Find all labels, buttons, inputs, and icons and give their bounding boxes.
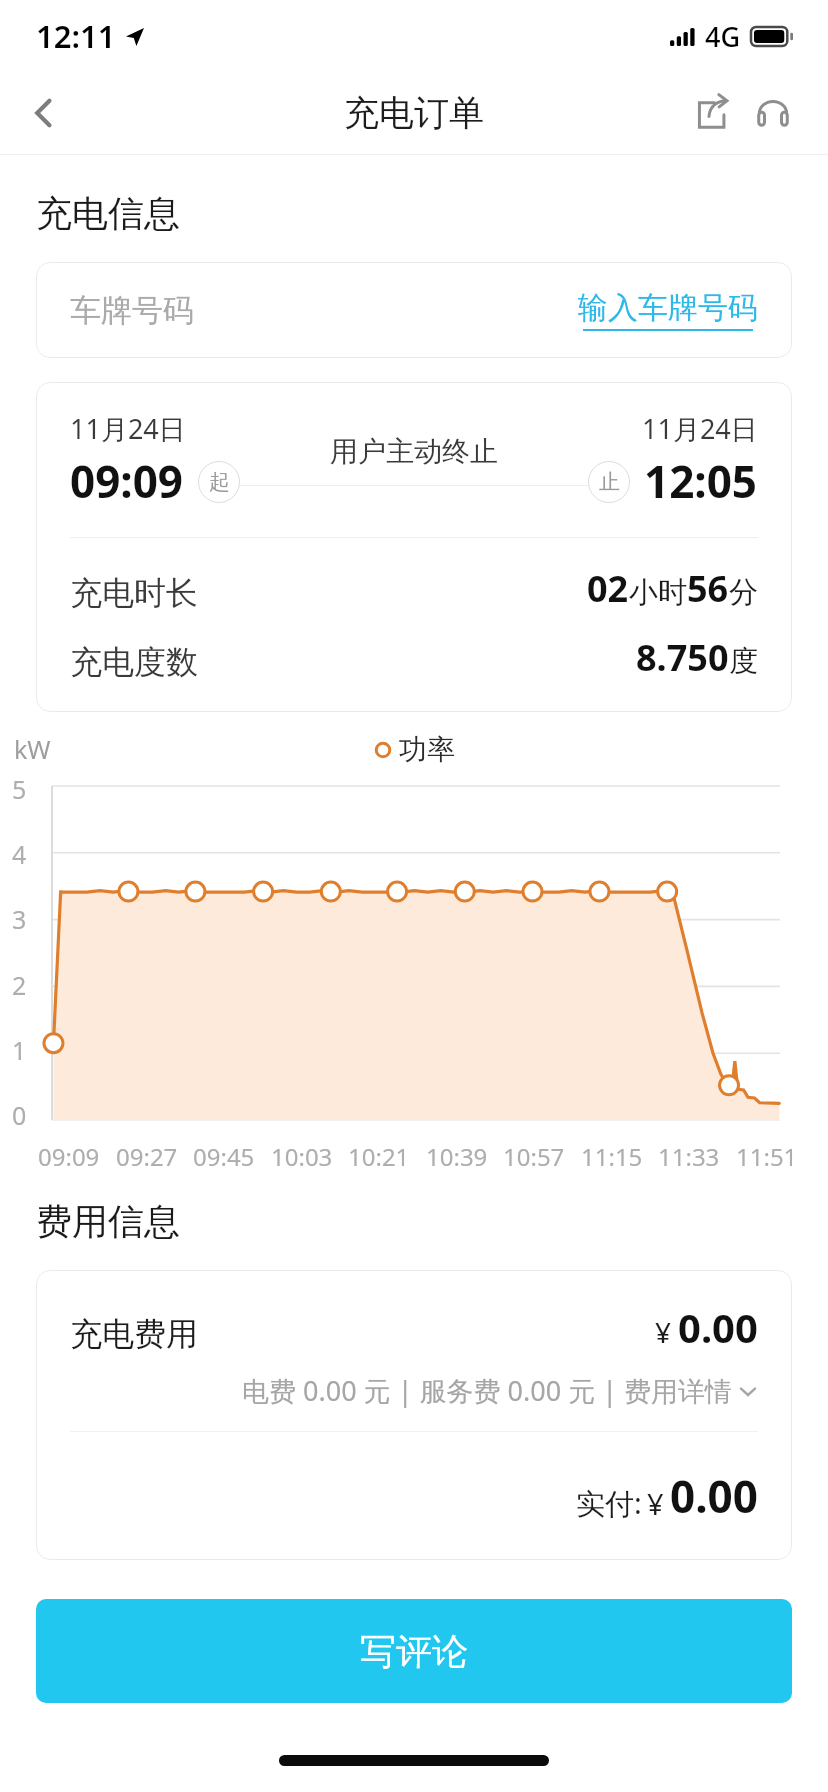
button[interactable]: 车牌号码 bbox=[36, 262, 792, 358]
staticText: 12:05 bbox=[644, 451, 758, 511]
staticText: 10:21 bbox=[348, 1140, 410, 1173]
staticText: ¥ bbox=[655, 1313, 672, 1351]
staticText: 4G bbox=[705, 18, 741, 55]
staticText: 0.00 bbox=[678, 1300, 758, 1354]
staticText: 10:03 bbox=[271, 1140, 333, 1173]
staticText: 电费 0.00 元 | 服务费 0.00 元 | 费用详情 bbox=[242, 1372, 733, 1409]
staticText: 起 bbox=[209, 469, 230, 495]
staticText: 56 bbox=[687, 564, 729, 613]
staticText: 3 bbox=[12, 902, 27, 936]
staticText: 1 bbox=[12, 1033, 27, 1067]
button[interactable]: 写评论 bbox=[36, 1599, 792, 1703]
staticText: 11月24日 bbox=[642, 410, 758, 447]
staticText: 11:51 bbox=[736, 1140, 798, 1173]
staticText: 10:39 bbox=[426, 1140, 488, 1173]
staticText: 09:09 bbox=[70, 451, 184, 511]
staticText: 输入车牌号码 bbox=[578, 289, 758, 327]
staticText: 写评论 bbox=[360, 1629, 468, 1674]
staticText: 2 bbox=[12, 968, 27, 1002]
staticText: 费用信息 bbox=[36, 1199, 180, 1244]
staticText: 11:15 bbox=[581, 1140, 643, 1173]
staticText: 充电时长 bbox=[70, 573, 198, 613]
staticText: 车牌号码 bbox=[70, 291, 194, 330]
staticText: 11月24日 bbox=[70, 410, 186, 447]
staticText: 充电信息 bbox=[36, 191, 180, 236]
staticText: 充电度数 bbox=[70, 642, 198, 682]
staticText: 8.750 bbox=[636, 633, 729, 682]
staticText: 充电订单 bbox=[344, 91, 484, 135]
staticText: 10:57 bbox=[503, 1140, 565, 1173]
staticText: 分 bbox=[729, 574, 758, 611]
staticText: 09:27 bbox=[116, 1140, 178, 1173]
staticText: kW bbox=[14, 732, 51, 766]
staticText: 5 bbox=[12, 772, 27, 806]
staticText: 4 bbox=[12, 837, 27, 871]
staticText: 12:11 bbox=[36, 15, 116, 57]
staticText: 实付: bbox=[576, 1483, 642, 1523]
staticText: 止 bbox=[599, 469, 620, 495]
button[interactable]: Customer service bbox=[742, 82, 804, 144]
staticText: 用户主动终止 bbox=[330, 434, 498, 469]
staticText: 充电费用 bbox=[70, 1314, 198, 1354]
staticText: 09:09 bbox=[38, 1140, 100, 1173]
staticText: 02 bbox=[587, 564, 629, 613]
button[interactable]: 电费 0.00 元 | 服务费 0.00 元 | 费用详情 bbox=[70, 1372, 758, 1409]
staticText: 功率 bbox=[399, 732, 455, 767]
staticText: 11:33 bbox=[658, 1140, 720, 1173]
button[interactable]: Share bbox=[680, 82, 742, 144]
staticText: 度 bbox=[729, 643, 758, 680]
staticText: ¥ bbox=[647, 1484, 664, 1523]
staticText: 0 bbox=[12, 1098, 27, 1132]
button[interactable]: Back bbox=[8, 77, 80, 149]
staticText: 小时 bbox=[629, 574, 687, 611]
staticText: 09:45 bbox=[193, 1140, 255, 1173]
staticText: 0.00 bbox=[670, 1466, 758, 1526]
